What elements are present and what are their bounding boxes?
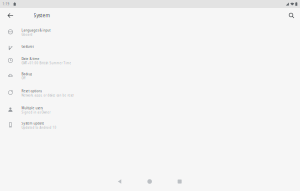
staticText: Off [21,76,25,80]
staticText: Gboard [21,33,32,36]
button[interactable]: Recent apps [164,175,195,187]
button[interactable]: Multiple users [0,103,300,118]
button[interactable]: Back [104,175,135,187]
button[interactable]: Reset options [0,84,300,103]
staticText: Updated to Android 10 [21,126,56,129]
staticText: System update [21,121,44,125]
staticText: Signed in as Owner [21,110,50,114]
staticText: Date & time [21,57,39,61]
button[interactable]: Navigate up [2,7,18,23]
button[interactable]: Languages & input [0,23,300,41]
staticText: GMT+01:00 British Summer Time [21,61,71,65]
button[interactable]: Search settings [283,7,299,23]
staticText: Multiple users [21,106,42,110]
staticText: 1:19 [2,2,9,6]
staticText: Reset options [21,89,41,93]
button[interactable]: System update [0,118,300,133]
button[interactable]: Date & time [0,53,300,68]
button[interactable]: Gestures [0,41,300,53]
button[interactable]: Home [135,175,164,187]
staticText: Gestures [21,44,33,48]
staticText: Languages & input [21,28,50,32]
staticText: System [33,12,49,19]
button[interactable]: Backup [0,68,300,84]
staticText: Backup [21,72,32,76]
staticText: Network, apps, or device can be reset [21,93,74,97]
